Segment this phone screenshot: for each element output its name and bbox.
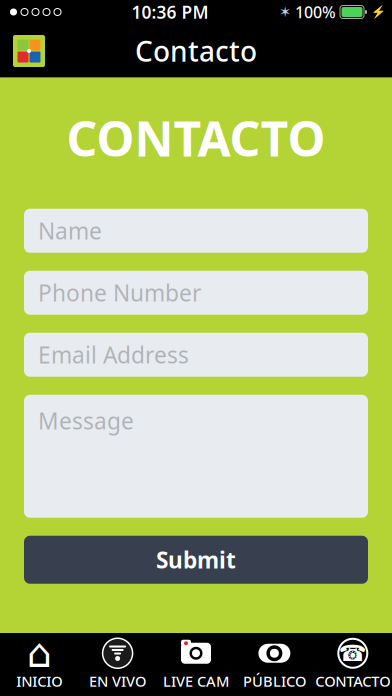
- staticText: Name: [38, 216, 102, 246]
- staticText: EN VIVO: [89, 671, 146, 691]
- staticText: Submit: [156, 545, 236, 575]
- staticText: LIVE CAM: [163, 671, 229, 691]
- staticText: ⚡: [371, 5, 386, 19]
- staticText: Phone Number: [38, 278, 201, 308]
- button[interactable]: ☎: [314, 633, 392, 696]
- button[interactable]: Home: [12, 34, 46, 68]
- staticText: Contacto: [135, 32, 257, 70]
- button[interactable]: EN VIVO: [78, 633, 157, 696]
- staticText: INICIO: [16, 671, 62, 691]
- staticText: 100%: [295, 1, 336, 23]
- staticText: Message: [38, 406, 134, 436]
- button[interactable]: LIVE CAM: [157, 633, 235, 696]
- staticText: ✶: [279, 4, 291, 20]
- staticText: 10:36 PM: [131, 0, 208, 23]
- staticText: ⌂: [27, 631, 52, 676]
- staticText: PÚBLICO: [243, 671, 306, 691]
- staticText: ☎: [339, 640, 367, 666]
- button[interactable]: Submit: [24, 536, 368, 584]
- staticText: Email Address: [38, 340, 189, 370]
- staticText: CONTACTO: [66, 106, 325, 170]
- staticText: CONTACTO: [315, 671, 390, 691]
- button[interactable]: ⌂: [0, 633, 78, 696]
- button[interactable]: PÚBLICO: [235, 633, 314, 696]
